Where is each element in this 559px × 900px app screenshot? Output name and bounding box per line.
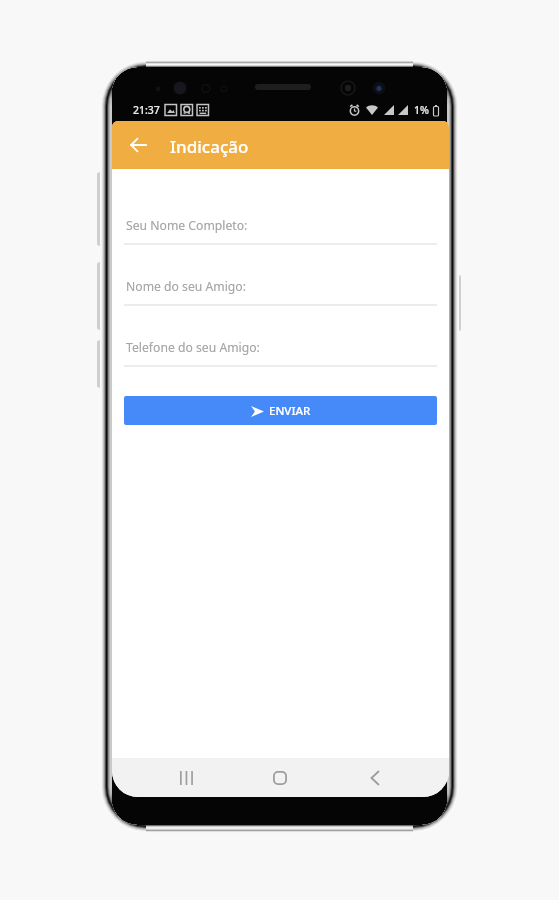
staticText: ENVIAR — [269, 403, 311, 419]
button[interactable]: Back — [353, 758, 397, 797]
staticText: Telefone do seu Amigo: — [126, 339, 260, 356]
button[interactable]: Recent apps — [164, 758, 208, 797]
staticText: 1% — [414, 103, 429, 117]
staticText: 21:37 — [133, 103, 160, 117]
button[interactable]: Home — [258, 758, 302, 797]
staticText: Nome do seu Amigo: — [126, 278, 246, 295]
staticText: Indicação — [170, 135, 249, 158]
staticText: Seu Nome Completo: — [126, 217, 248, 234]
button[interactable]: Navigate up — [118, 125, 158, 165]
button[interactable]: ENVIAR — [124, 396, 437, 425]
